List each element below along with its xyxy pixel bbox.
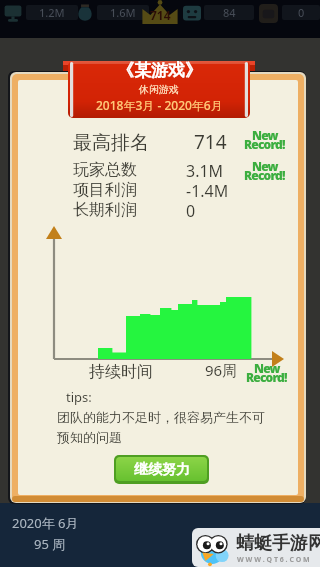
staticText: 96周 <box>205 360 238 380</box>
staticText: 持续时间 <box>89 362 153 382</box>
button[interactable]: 继续努力 <box>114 455 209 484</box>
staticText: 《某游戏》 <box>117 60 202 81</box>
staticText: 蜻蜓手游网 <box>236 532 320 555</box>
staticText: 玩家总数 <box>73 160 137 180</box>
staticText: 2018年3月 - 2020年6月 <box>96 97 223 113</box>
staticText: 最高排名 <box>73 131 149 155</box>
staticText: New <box>252 158 278 174</box>
staticText: 714 <box>150 7 171 23</box>
staticText: 继续努力 <box>134 461 190 479</box>
staticText: Record! <box>246 369 287 385</box>
staticText: 1.2M <box>39 5 65 20</box>
staticText: 95 周 <box>34 535 66 553</box>
staticText: tips: <box>66 388 92 406</box>
staticText: 长期利润 <box>73 200 137 220</box>
staticText: New <box>254 360 280 376</box>
staticText: 2020年 6月 <box>12 514 79 532</box>
staticText: 0 <box>298 5 305 20</box>
staticText: 项目利润 <box>73 180 137 200</box>
staticText: -1.4M <box>186 180 229 202</box>
staticText: Record! <box>244 136 285 152</box>
staticText: New <box>252 127 278 143</box>
staticText: 休闲游戏 <box>139 83 179 96</box>
staticText: 84 <box>223 5 236 20</box>
staticText: 714 <box>194 129 227 155</box>
staticText: 1.6M <box>110 5 136 20</box>
staticText: 3.1M <box>186 160 224 182</box>
staticText: 0 <box>186 200 196 222</box>
staticText: Record! <box>244 167 285 183</box>
staticText: 团队的能力不足时，很容易产生不可 预知的问题 <box>57 409 265 446</box>
staticText: W W W . Q T 6 . C O M <box>237 555 310 565</box>
